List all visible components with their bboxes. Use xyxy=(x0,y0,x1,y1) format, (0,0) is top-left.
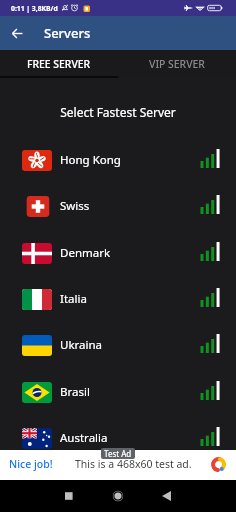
button[interactable]: Australia xyxy=(0,415,236,461)
staticText: Australia xyxy=(60,430,108,446)
staticText: Italia xyxy=(60,291,87,307)
staticText: FREE SERVER xyxy=(27,57,91,71)
button[interactable]: Swiss xyxy=(0,183,236,229)
button[interactable]: Brasil xyxy=(0,369,236,415)
staticText: Test Ad xyxy=(104,448,132,459)
staticText: Nice job! xyxy=(9,457,53,471)
button[interactable]: Denmark xyxy=(0,230,236,276)
button[interactable]: Italia xyxy=(0,276,236,322)
staticText: Select Fastest Server xyxy=(0,104,236,120)
button[interactable]: FREE SERVER xyxy=(0,50,118,78)
staticText: Servers xyxy=(44,24,91,42)
staticText: Brasil xyxy=(60,384,90,400)
staticText: Ukraina xyxy=(60,337,103,353)
staticText: Denmark xyxy=(60,245,111,261)
staticText: VIP SERVER xyxy=(149,57,205,71)
staticText: 0:11 | 3,8KB/d xyxy=(11,4,58,13)
button[interactable]: VIP SERVER xyxy=(118,50,236,78)
staticText: This is a 468x60 test ad. xyxy=(75,457,192,471)
button[interactable]: Ukraina xyxy=(0,322,236,368)
staticText: Hong Kong xyxy=(60,152,121,168)
staticText: Swiss xyxy=(60,198,90,214)
button[interactable]: Back xyxy=(7,23,28,44)
button[interactable]: Hong Kong xyxy=(0,137,236,183)
